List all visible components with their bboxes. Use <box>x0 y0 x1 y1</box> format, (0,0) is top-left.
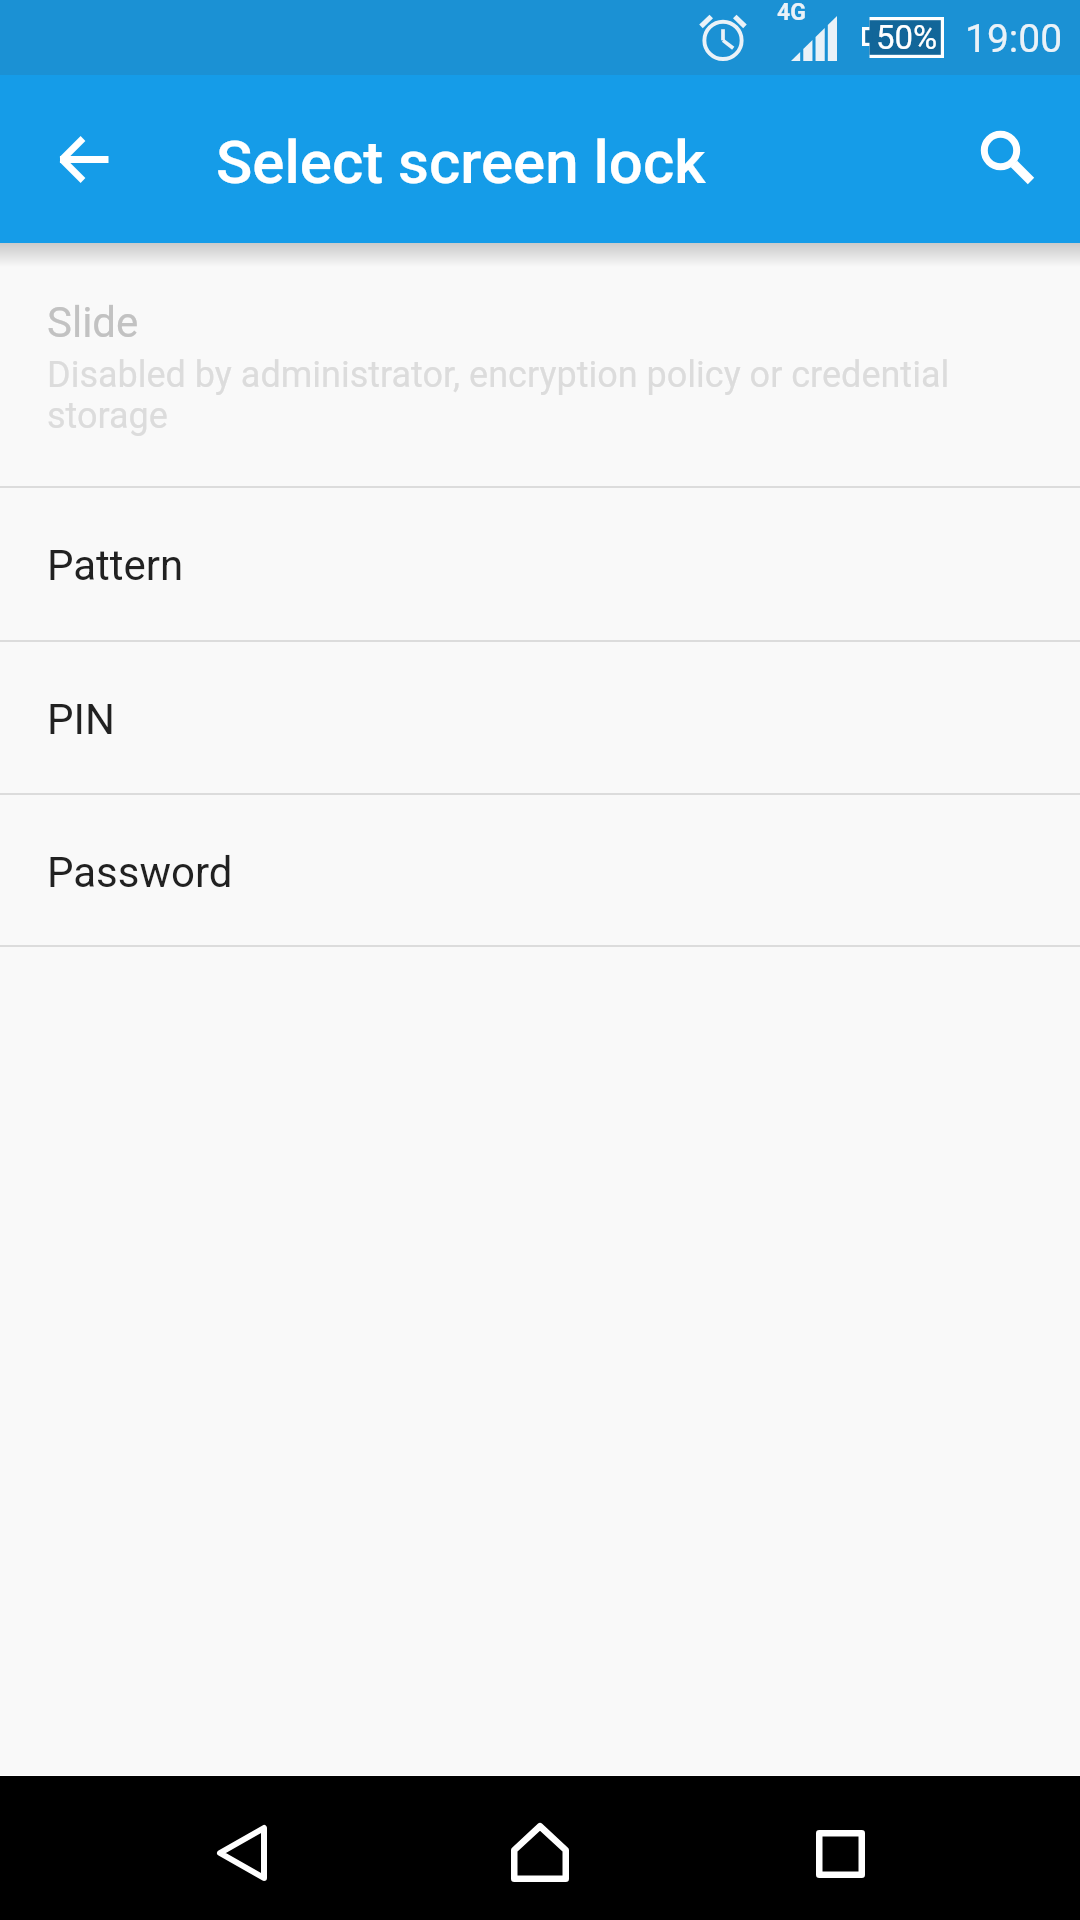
staticText: Slide <box>47 298 139 347</box>
staticText: Select screen lock <box>216 127 706 197</box>
staticText: Pattern <box>47 541 184 590</box>
button[interactable]: Navigate up <box>36 111 132 207</box>
button[interactable]: Home <box>480 1792 600 1912</box>
button[interactable]: Back <box>182 1793 302 1913</box>
button[interactable]: Search <box>959 109 1055 205</box>
button[interactable]: PIN <box>0 642 1080 793</box>
button[interactable]: Pattern <box>0 488 1080 640</box>
button[interactable]: Slide <box>0 243 1080 486</box>
staticText: PIN <box>47 695 115 744</box>
staticText: Password <box>47 848 233 897</box>
staticText: 4G <box>777 0 806 26</box>
staticText: 50% <box>876 18 938 57</box>
staticText: 19:00 <box>965 16 1063 62</box>
button[interactable]: Recent apps <box>780 1794 900 1914</box>
staticText: Disabled by administrator, encryption po… <box>47 354 987 437</box>
button[interactable]: Password <box>0 795 1080 945</box>
